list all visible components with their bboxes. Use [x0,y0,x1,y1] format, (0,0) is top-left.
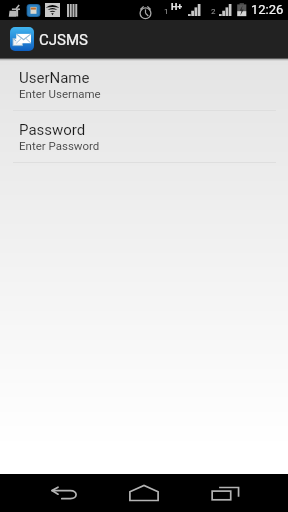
button[interactable]: Recent apps [209,474,241,512]
staticText: UserName [19,69,90,87]
staticText: Enter Password [19,139,100,152]
button[interactable]: Back [48,474,80,512]
staticText: 2 [211,7,216,16]
staticText: 12:26 [251,2,284,17]
button[interactable]: Password [0,110,288,162]
staticText: Password [19,121,86,139]
button[interactable]: Home [128,474,160,512]
staticText: H+ [171,2,183,13]
staticText: 1 [164,7,169,16]
staticText: Enter Username [19,87,101,100]
staticText: CJSMS [39,31,88,49]
button[interactable]: UserName [0,58,288,110]
